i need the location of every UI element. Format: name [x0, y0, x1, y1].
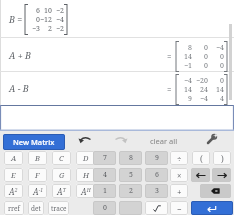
- staticText: A − B: [9, 82, 29, 94]
- staticText: 0: [36, 15, 40, 24]
- staticText: 0: [220, 61, 224, 70]
- button[interactable]: [145, 201, 168, 215]
- button[interactable]: G: [52, 168, 71, 182]
- button[interactable]: [191, 201, 233, 215]
- button[interactable]: 6: [145, 168, 168, 182]
- staticText: 14: [216, 85, 224, 94]
- staticText: 9: [155, 153, 159, 163]
- button[interactable]: [119, 201, 142, 215]
- button[interactable]: [78, 134, 92, 145]
- button[interactable]: ÷: [170, 151, 188, 165]
- staticText: −3: [32, 24, 40, 33]
- staticText: 0: [204, 52, 208, 61]
- staticText: 0: [204, 43, 208, 52]
- staticText: 1: [103, 186, 107, 196]
- button[interactable]: D: [76, 151, 95, 165]
- staticText: trace: [51, 204, 67, 213]
- staticText: −4: [200, 94, 208, 103]
- button[interactable]: 1: [93, 184, 116, 198]
- button[interactable]: −: [170, 201, 188, 215]
- staticText: 2: [48, 24, 52, 33]
- button[interactable]: H: [76, 168, 95, 182]
- staticText: 6: [36, 6, 40, 15]
- staticText: ×: [177, 170, 182, 181]
- button[interactable]: 7: [93, 151, 116, 165]
- button[interactable]: [204, 134, 217, 147]
- staticText: 7: [103, 153, 107, 163]
- button[interactable]: [0, 0, 234, 37]
- button[interactable]: [191, 168, 210, 182]
- staticText: 6: [155, 170, 159, 180]
- staticText: 0: [220, 52, 224, 61]
- button[interactable]: [114, 134, 128, 145]
- staticText: 5: [129, 170, 133, 180]
- button[interactable]: AT: [52, 184, 71, 198]
- staticText: D: [83, 153, 89, 163]
- staticText: 14: [184, 52, 192, 61]
- staticText: ): [221, 153, 224, 164]
- staticText: −1: [184, 61, 192, 70]
- staticText: −2: [56, 24, 64, 33]
- staticText: ÷: [177, 153, 182, 164]
- button[interactable]: ): [213, 151, 231, 165]
- staticText: 3: [155, 186, 159, 196]
- button[interactable]: clear all: [150, 136, 180, 146]
- staticText: 0: [204, 61, 208, 70]
- button[interactable]: F: [28, 168, 47, 182]
- button[interactable]: (: [192, 151, 210, 165]
- button[interactable]: A: [4, 151, 23, 165]
- button[interactable]: [200, 184, 231, 198]
- staticText: =: [167, 51, 172, 62]
- staticText: −4: [216, 43, 224, 52]
- staticText: F: [35, 170, 40, 180]
- staticText: 4: [220, 94, 224, 103]
- staticText: G: [59, 170, 65, 180]
- button[interactable]: 0: [93, 201, 116, 215]
- staticText: −12: [40, 15, 52, 24]
- staticText: A: [11, 153, 17, 163]
- staticText: New Matrix: [13, 137, 55, 147]
- button[interactable]: 3: [145, 184, 168, 198]
- staticText: H: [83, 170, 89, 180]
- button[interactable]: +: [170, 184, 188, 198]
- staticText: −4: [56, 15, 64, 24]
- button[interactable]: E: [4, 168, 23, 182]
- button[interactable]: B: [28, 151, 47, 165]
- button[interactable]: 9: [145, 151, 168, 165]
- staticText: AH: [81, 186, 91, 197]
- staticText: 24: [200, 85, 208, 94]
- button[interactable]: 4: [93, 168, 116, 182]
- button[interactable]: rref: [4, 201, 24, 215]
- button[interactable]: [0, 72, 234, 104]
- staticText: (: [200, 153, 203, 164]
- staticText: C: [59, 153, 64, 163]
- staticText: E: [11, 170, 16, 180]
- staticText: 9: [188, 94, 192, 103]
- staticText: det: [31, 204, 41, 213]
- button[interactable]: ×: [170, 168, 188, 182]
- staticText: AT: [57, 186, 66, 197]
- staticText: 10: [44, 6, 52, 15]
- staticText: A-1: [33, 186, 43, 197]
- button[interactable]: 5: [119, 168, 142, 182]
- button[interactable]: [212, 168, 231, 182]
- staticText: rref: [8, 204, 20, 213]
- button[interactable]: New Matrix: [3, 134, 65, 150]
- staticText: 4: [103, 170, 107, 180]
- staticText: −: [177, 203, 182, 214]
- button[interactable]: [0, 38, 234, 71]
- staticText: 2: [129, 186, 133, 196]
- button[interactable]: 8: [119, 151, 142, 165]
- button[interactable]: det: [28, 201, 44, 215]
- button[interactable]: C: [52, 151, 71, 165]
- button[interactable]: AH: [76, 184, 95, 198]
- staticText: clear all: [150, 136, 178, 146]
- staticText: 0: [103, 203, 107, 213]
- staticText: 8: [188, 43, 192, 52]
- button[interactable]: A-1: [28, 184, 47, 198]
- button[interactable]: trace: [48, 201, 69, 215]
- button[interactable]: 2: [119, 184, 142, 198]
- button[interactable]: A2: [4, 184, 23, 198]
- button[interactable]: [0, 105, 234, 131]
- staticText: 0: [220, 76, 224, 85]
